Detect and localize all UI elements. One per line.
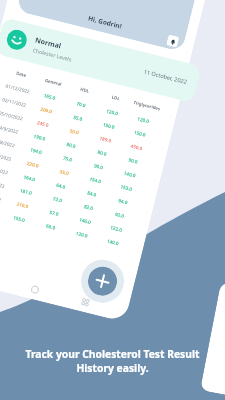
staticText: 60.0 <box>34 220 67 233</box>
staticText: 120.0 <box>127 113 160 127</box>
button[interactable]: 02/7/2022 <box>0 146 144 198</box>
staticText: 03/8/2022 <box>0 136 21 150</box>
staticText: Date <box>5 67 38 81</box>
staticText: 90.0 <box>117 154 149 167</box>
staticText: 165.0 <box>33 89 66 103</box>
staticText: 90.0 <box>82 160 115 173</box>
staticText: 220.0 <box>16 157 49 171</box>
staticText: 154.0 <box>79 173 112 187</box>
button[interactable]: 01/6/2022 <box>0 159 140 212</box>
staticText: 04/9/2022 <box>0 122 24 136</box>
staticText: 120.0 <box>65 227 98 241</box>
staticText: 140.0 <box>97 235 129 249</box>
staticText: 35.0 <box>48 165 80 179</box>
staticText: 164.0 <box>13 171 46 185</box>
staticText: 01/12/2022 <box>1 81 34 95</box>
staticText: 153.0 <box>110 181 143 194</box>
staticText: 11 October, 2022 <box>143 68 189 86</box>
staticText: General <box>37 75 70 89</box>
staticText: 80.0 <box>86 146 118 160</box>
staticText: 57.0 <box>38 206 70 220</box>
staticText: 02/7/2022 <box>0 149 17 163</box>
button[interactable]: 05/10/2022 <box>0 105 154 158</box>
staticText: 64.0 <box>45 179 77 193</box>
button[interactable]: Reports <box>25 280 45 299</box>
button[interactable]: 02/11/2022 <box>0 91 157 144</box>
staticText: LDL <box>100 91 132 104</box>
staticText: HDL <box>69 83 101 96</box>
button[interactable]: Grid <box>76 292 95 312</box>
staticText: Normal <box>34 35 63 52</box>
staticText: 82.0 <box>72 200 105 214</box>
staticText: 07/4/2022 <box>0 190 7 204</box>
staticText: Hi, Godrin! <box>87 14 123 31</box>
staticText: Triglycerides <box>131 98 163 112</box>
staticText: 01/6/2022 <box>0 163 14 177</box>
button[interactable]: 03/8/2022 <box>0 132 147 185</box>
staticText: 210.0 <box>6 198 39 212</box>
button[interactable]: 08/5/2022 <box>0 173 137 225</box>
staticText: 75.0 <box>51 152 84 165</box>
staticText: 120.0 <box>96 105 128 119</box>
staticText: 08/5/2022 <box>0 177 11 190</box>
staticText: 150.0 <box>124 127 156 140</box>
staticText: 206.0 <box>30 103 63 117</box>
staticText: 450.0 <box>120 140 153 154</box>
staticText: 70.0 <box>65 97 97 111</box>
button[interactable]: Notifications <box>166 34 179 48</box>
button[interactable]: 04/9/2022 <box>0 118 150 171</box>
staticText: 140.0 <box>113 167 146 181</box>
staticText: 02/11/2022 <box>0 95 31 109</box>
staticText: 72.0 <box>41 193 74 206</box>
button[interactable]: 01/12/2022 <box>0 78 161 130</box>
staticText: 194.0 <box>19 144 53 158</box>
staticText: 55.0 <box>62 111 94 125</box>
staticText: 190.0 <box>23 130 56 144</box>
staticText: 146.0 <box>69 214 101 227</box>
staticText: 94.0 <box>107 194 139 208</box>
button[interactable]: Add result <box>76 255 129 307</box>
staticText: Cholester Levels <box>32 46 73 63</box>
staticText: 181.0 <box>9 185 43 198</box>
staticText: 84.0 <box>76 187 108 200</box>
staticText: 245.0 <box>26 117 60 130</box>
button[interactable]: 06/3/2022 <box>0 200 130 253</box>
staticText: 50.0 <box>58 125 91 138</box>
staticText: 122.0 <box>100 222 132 235</box>
staticText: 05/10/2022 <box>0 109 28 122</box>
staticText: 92.0 <box>103 208 136 222</box>
button[interactable]: 07/4/2022 <box>0 186 133 239</box>
staticText: 80.0 <box>55 138 87 152</box>
staticText: Track your Cholesterol Test Result Histo… <box>0 347 225 375</box>
staticText: 150.0 <box>93 119 125 132</box>
staticText: 155.0 <box>2 212 36 226</box>
button[interactable]: Normal <box>0 17 202 103</box>
staticText: 189.0 <box>89 132 122 146</box>
